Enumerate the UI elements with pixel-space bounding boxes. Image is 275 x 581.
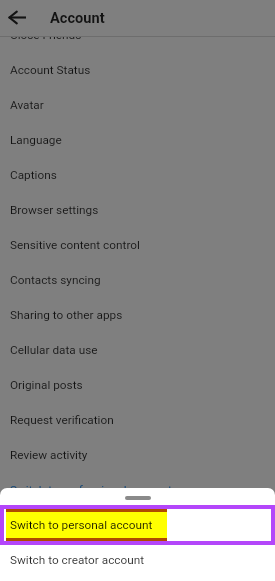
button[interactable]: Language: [0, 122, 275, 157]
button[interactable]: Sharing to other apps: [0, 297, 275, 332]
staticText: Avatar: [10, 98, 44, 112]
button[interactable]: Review activity: [0, 437, 275, 472]
staticText: Sharing to other apps: [10, 308, 123, 322]
button[interactable]: Captions: [0, 157, 275, 192]
button[interactable]: Sensitive content control: [0, 227, 275, 262]
staticText: Browser settings: [10, 203, 99, 217]
staticText: Original posts: [10, 378, 83, 392]
staticText: Switch to personal account: [10, 518, 153, 532]
staticText: Captions: [10, 168, 57, 182]
button[interactable]: Back: [9, 9, 27, 27]
staticText: Switch to professional account: [10, 483, 172, 497]
staticText: Sensitive content control: [10, 238, 140, 252]
staticText: Contacts syncing: [10, 273, 101, 287]
button[interactable]: Account Status: [0, 52, 275, 87]
staticText: Account Status: [10, 63, 91, 77]
staticText: Language: [10, 133, 62, 147]
staticText: Review activity: [10, 448, 88, 462]
staticText: Account: [50, 9, 105, 26]
button[interactable]: Cellular data use: [0, 332, 275, 367]
button[interactable]: Switch to creator account: [0, 545, 275, 581]
staticText: Close Friends: [10, 28, 82, 42]
button[interactable]: Request verification: [0, 402, 275, 437]
button[interactable]: Browser settings: [0, 192, 275, 227]
button[interactable]: Original posts: [0, 367, 275, 402]
button[interactable]: Switch to professional account: [0, 472, 275, 507]
staticText: Switch to creator account: [10, 553, 145, 567]
staticText: Cellular data use: [10, 343, 98, 357]
button[interactable]: Avatar: [0, 87, 275, 122]
button[interactable]: Close Friends: [0, 17, 275, 52]
button[interactable]: Switch to personal account: [0, 505, 275, 545]
staticText: Request verification: [10, 413, 114, 427]
button[interactable]: Contacts syncing: [0, 262, 275, 297]
